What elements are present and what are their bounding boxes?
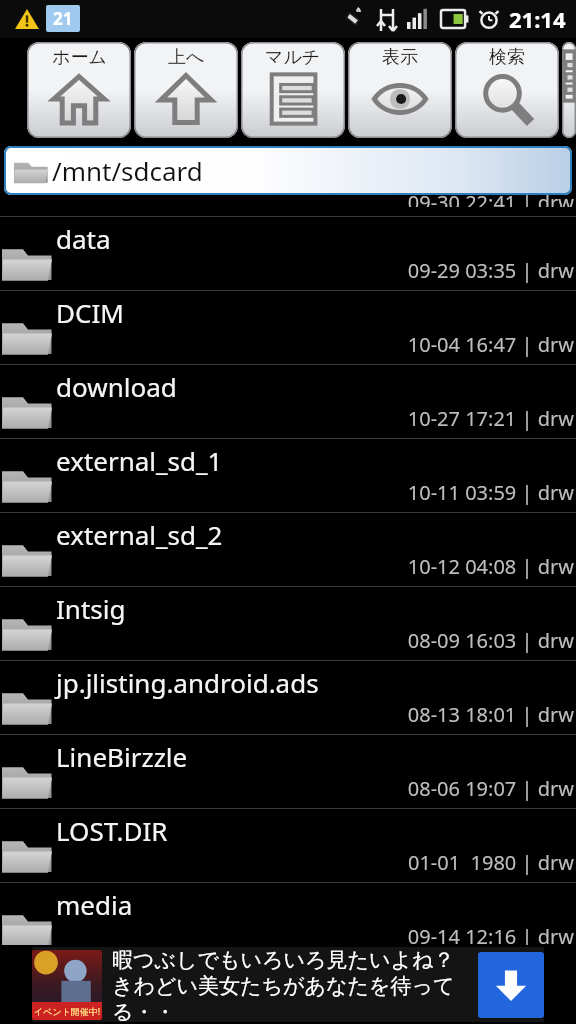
staticText: マルチ [265,46,321,69]
staticText: ホーム [52,46,107,69]
staticText: LOST.DIR [56,813,168,848]
staticText: 08-06 19:07 | drw [407,775,574,802]
button[interactable]: external_sd_1 [0,439,576,512]
staticText: 暇つぶしでもいろいろ見たいよね？ [112,947,455,973]
button[interactable]: Multi select [241,42,345,138]
staticText: LineBirzzle [56,739,188,774]
button[interactable]: Download [478,952,544,1018]
staticText: 01-01 1980 | drw [407,849,574,876]
button[interactable]: 09-30 22:41 | drw [0,198,576,216]
staticText: data [56,221,111,256]
button[interactable]: /mnt/sdcard [4,146,572,195]
button[interactable]: external_sd_2 [0,513,576,586]
button[interactable]: jp.jlisting.android.ads [0,661,576,734]
staticText: media [56,887,133,922]
staticText: る・・ [112,999,176,1022]
button[interactable]: DCIM [0,291,576,364]
button[interactable]: Search [455,42,559,138]
staticText: external_sd_2 [56,517,223,552]
staticText: 09-30 22:41 | drw [407,189,574,207]
staticText: DCIM [56,295,124,330]
staticText: 08-09 16:03 | drw [407,627,574,654]
button[interactable]: イベント開催中! [0,945,576,1024]
staticText: 上へ [168,46,205,69]
staticText: 検索 [489,46,525,69]
button[interactable]: Intsig [0,587,576,660]
button[interactable]: LOST.DIR [0,809,576,882]
staticText: Intsig [56,591,126,626]
staticText: 09-29 03:35 | drw [407,257,574,284]
button[interactable]: More [562,42,576,138]
button[interactable]: Up [134,42,238,138]
staticText: 表示 [382,46,418,69]
button[interactable]: download [0,365,576,438]
button[interactable]: LineBirzzle [0,735,576,808]
staticText: jp.jlisting.android.ads [56,665,319,700]
button[interactable]: media [0,883,576,956]
staticText: /mnt/sdcard [52,153,203,188]
staticText: 10-04 16:47 | drw [407,331,574,358]
staticText: 08-13 18:01 | drw [407,701,574,728]
staticText: 10-27 17:21 | drw [407,405,574,432]
staticText: イベント開催中! [34,1005,101,1017]
staticText: きわどい美女たちがあなたを待って [112,973,455,999]
staticText: 10-12 04:08 | drw [407,553,574,580]
button[interactable]: data [0,217,576,290]
button[interactable]: View [348,42,452,138]
staticText: 09-14 12:16 | drw [407,923,574,950]
staticText: 21 [53,7,73,30]
button[interactable]: Home [27,42,131,138]
staticText: external_sd_1 [56,443,223,478]
staticText: download [56,369,177,404]
staticText: 21:14 [509,4,566,34]
staticText: 10-11 03:59 | drw [407,479,574,506]
